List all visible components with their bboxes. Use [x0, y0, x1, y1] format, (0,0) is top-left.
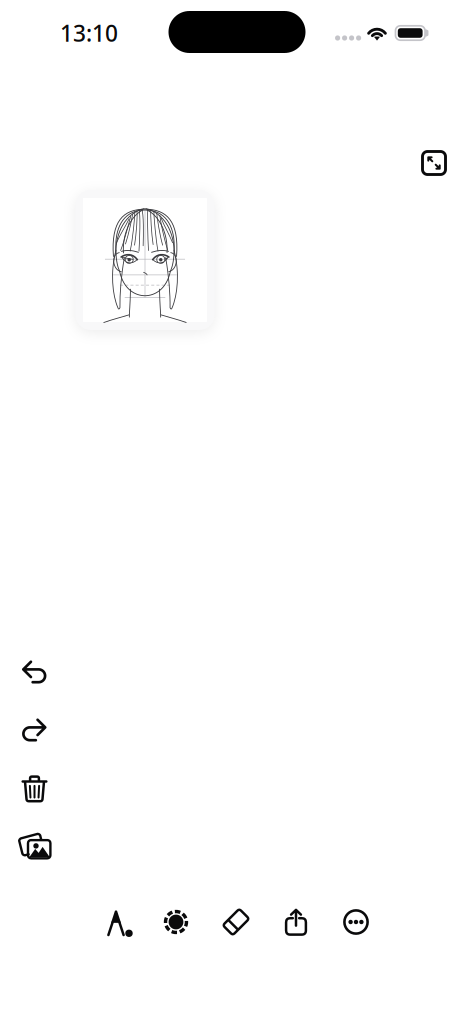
button[interactable]: Redo [7, 705, 61, 755]
staticText: 13:10 [60, 18, 118, 48]
button[interactable]: More [330, 896, 382, 948]
button[interactable]: Eraser [210, 896, 262, 948]
button[interactable]: Brush [94, 897, 146, 949]
button[interactable]: Undo [7, 647, 61, 697]
button[interactable]: Photos [8, 822, 62, 872]
button[interactable]: Share [270, 896, 322, 948]
button[interactable]: Delete [7, 763, 61, 813]
button[interactable]: Color [150, 896, 202, 948]
button[interactable]: Expand canvas [412, 141, 456, 185]
button[interactable]: Canvas thumbnail [75, 190, 214, 330]
